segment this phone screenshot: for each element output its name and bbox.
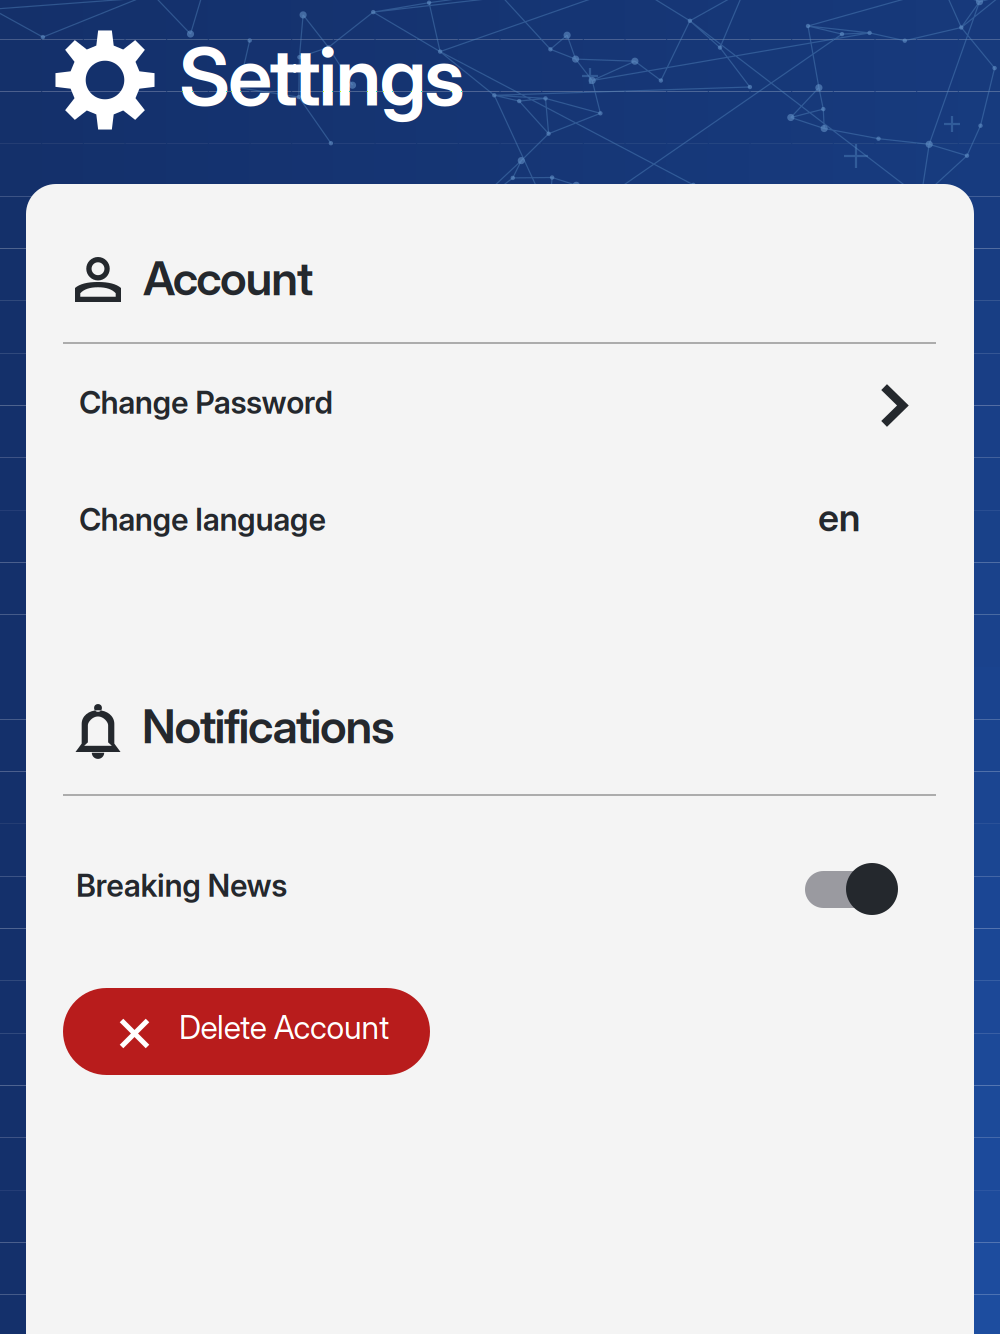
button[interactable]: Delete Account xyxy=(63,988,430,1075)
button[interactable]: Change language xyxy=(63,486,936,576)
staticText: Notifications xyxy=(142,698,395,754)
button[interactable]: Change Password xyxy=(63,369,936,459)
staticText: en xyxy=(818,495,861,540)
staticText: Breaking News xyxy=(76,867,287,904)
staticText: Account xyxy=(143,250,313,306)
staticText: Delete Account xyxy=(179,1008,389,1047)
staticText: Settings xyxy=(179,28,464,125)
staticText: Change Password xyxy=(79,384,333,421)
staticText: Change language xyxy=(79,501,326,538)
button[interactable]: Breaking News xyxy=(63,846,936,930)
